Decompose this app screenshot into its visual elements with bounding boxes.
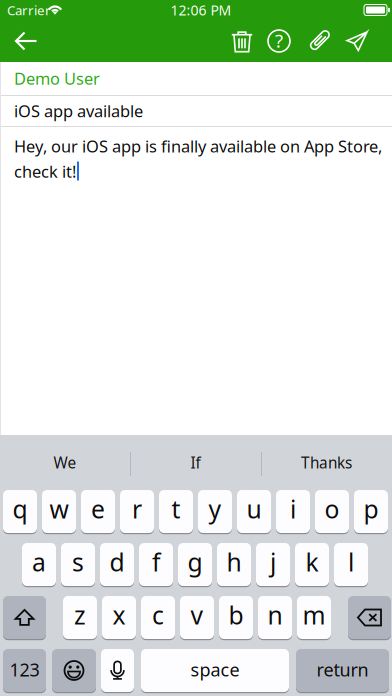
button[interactable]: i bbox=[276, 489, 310, 534]
staticText: d bbox=[109, 545, 124, 579]
button[interactable]: c bbox=[141, 595, 175, 640]
staticText: n bbox=[267, 598, 282, 632]
staticText: If bbox=[190, 452, 200, 473]
staticText: j bbox=[270, 545, 276, 579]
button[interactable]: Help bbox=[259, 20, 299, 62]
button[interactable]: Hey, our iOS app is finally available on… bbox=[0, 127, 392, 435]
staticText: iOS app available bbox=[14, 100, 143, 122]
button[interactable]: z bbox=[63, 595, 97, 640]
button[interactable]: e bbox=[81, 489, 115, 534]
button[interactable]: space bbox=[141, 648, 289, 693]
button[interactable]: iOS app available bbox=[0, 96, 392, 126]
staticText: w bbox=[49, 492, 68, 526]
staticText: c bbox=[152, 598, 164, 632]
staticText: i bbox=[290, 492, 296, 526]
button[interactable]: p bbox=[354, 489, 388, 534]
staticText: r bbox=[132, 492, 142, 526]
staticText: t bbox=[171, 492, 180, 526]
staticText: Carrier bbox=[7, 1, 51, 19]
staticText: ? bbox=[275, 28, 283, 53]
button[interactable]: w bbox=[42, 489, 76, 534]
button[interactable]: Send bbox=[337, 20, 377, 62]
staticText: check it! bbox=[14, 160, 76, 183]
staticText: 12:06 PM bbox=[170, 0, 231, 20]
staticText: f bbox=[152, 545, 160, 579]
button[interactable]: n bbox=[258, 595, 292, 640]
button[interactable]: Dictate bbox=[101, 648, 134, 693]
staticText: v bbox=[190, 598, 203, 632]
button[interactable]: Shift bbox=[3, 595, 46, 640]
button[interactable]: We bbox=[0, 435, 130, 490]
staticText: Thanks bbox=[301, 452, 352, 473]
staticText: e bbox=[91, 492, 105, 526]
button[interactable]: If bbox=[130, 435, 261, 490]
staticText: q bbox=[12, 492, 27, 526]
button[interactable]: Back bbox=[4, 20, 48, 62]
staticText: 123 bbox=[9, 657, 39, 682]
button[interactable]: Attach file bbox=[299, 20, 339, 62]
button[interactable]: Delete bbox=[348, 595, 391, 640]
staticText: k bbox=[305, 545, 318, 579]
staticText: l bbox=[348, 545, 354, 579]
button[interactable]: x bbox=[102, 595, 136, 640]
button[interactable]: Demo User bbox=[0, 62, 392, 95]
button[interactable]: g bbox=[178, 542, 212, 587]
button[interactable]: r bbox=[120, 489, 154, 534]
button[interactable]: u bbox=[237, 489, 271, 534]
button[interactable]: t bbox=[159, 489, 193, 534]
button[interactable]: a bbox=[22, 542, 56, 587]
button[interactable]: Thanks bbox=[261, 435, 392, 490]
button[interactable]: f bbox=[139, 542, 173, 587]
button[interactable]: b bbox=[219, 595, 253, 640]
button[interactable]: d bbox=[100, 542, 134, 587]
staticText: x bbox=[112, 598, 125, 632]
button[interactable]: v bbox=[180, 595, 214, 640]
staticText: return bbox=[316, 657, 368, 682]
staticText: Hey, our iOS app is finally available on… bbox=[14, 135, 382, 157]
button[interactable]: m bbox=[297, 595, 331, 640]
staticText: space bbox=[190, 657, 239, 682]
button[interactable]: return bbox=[296, 648, 389, 693]
staticText: m bbox=[302, 598, 325, 632]
button[interactable]: Delete draft bbox=[222, 20, 262, 62]
staticText: s bbox=[72, 545, 84, 579]
button[interactable]: l bbox=[334, 542, 368, 587]
staticText: y bbox=[208, 492, 221, 526]
staticText: b bbox=[228, 598, 243, 632]
button[interactable]: y bbox=[198, 489, 232, 534]
button[interactable]: j bbox=[256, 542, 290, 587]
button[interactable]: o bbox=[315, 489, 349, 534]
staticText: p bbox=[363, 492, 378, 526]
button[interactable]: s bbox=[61, 542, 95, 587]
staticText: Demo User bbox=[14, 67, 100, 90]
button[interactable]: Emoji bbox=[52, 648, 96, 693]
staticText: h bbox=[226, 545, 241, 579]
button[interactable]: k bbox=[295, 542, 329, 587]
staticText: We bbox=[53, 452, 76, 473]
button[interactable]: q bbox=[3, 489, 37, 534]
button[interactable]: h bbox=[217, 542, 251, 587]
button[interactable]: 123 bbox=[3, 648, 46, 693]
staticText: z bbox=[74, 598, 86, 632]
staticText: g bbox=[187, 545, 202, 579]
staticText: a bbox=[32, 545, 46, 579]
staticText: u bbox=[246, 492, 261, 526]
staticText: o bbox=[324, 492, 339, 526]
